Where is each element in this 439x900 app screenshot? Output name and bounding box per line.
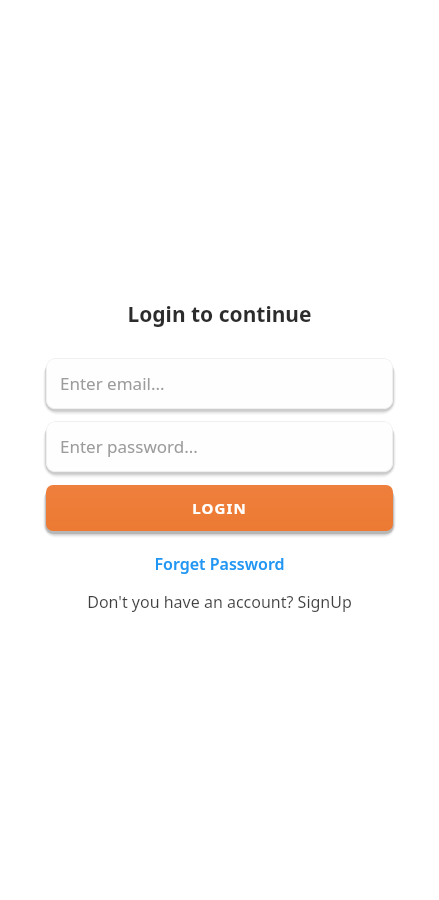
- staticText: Don't you have an account? SignUp: [87, 591, 352, 613]
- staticText: Enter password...: [60, 435, 198, 458]
- staticText: Enter email...: [60, 372, 165, 395]
- button[interactable]: LOGIN: [46, 485, 393, 531]
- staticText: Login to continue: [127, 300, 312, 329]
- button[interactable]: Forget Password: [148, 551, 291, 577]
- button[interactable]: Password input field: [46, 421, 393, 472]
- staticText: Forget Password: [154, 553, 285, 575]
- button[interactable]: Don't you have an account? SignUp: [81, 589, 358, 615]
- staticText: LOGIN: [192, 498, 247, 518]
- button[interactable]: Email input field: [46, 358, 393, 409]
